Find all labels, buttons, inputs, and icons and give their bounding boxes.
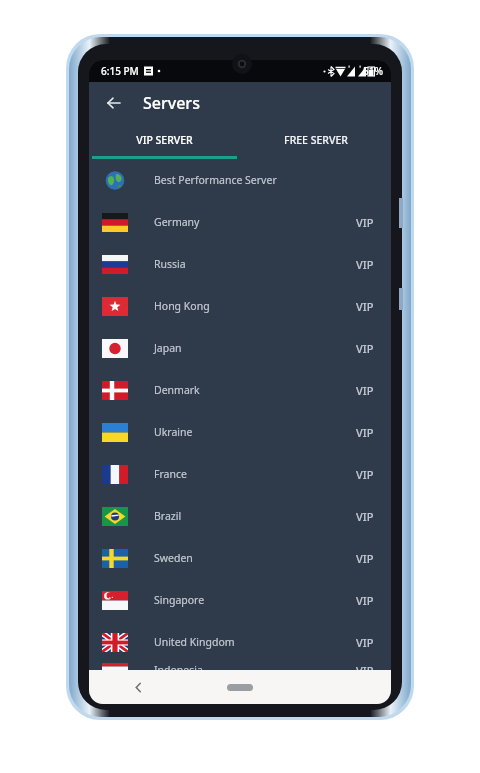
- staticText: United Kingdom: [154, 635, 235, 649]
- staticText: VIP: [356, 509, 374, 524]
- staticText: VIP: [356, 215, 374, 230]
- staticText: VIP: [356, 383, 374, 398]
- button[interactable]: Hong Kong: [89, 285, 391, 327]
- staticText: Japan: [154, 341, 182, 355]
- staticText: VIP: [356, 663, 374, 670]
- staticText: VIP: [356, 257, 374, 272]
- staticText: Best Performance Server: [154, 173, 277, 187]
- button[interactable]: Indonesia: [89, 663, 391, 670]
- staticText: Germany: [154, 215, 200, 229]
- staticText: VIP: [356, 593, 374, 608]
- staticText: VIP: [356, 635, 374, 650]
- button[interactable]: Brazil: [89, 495, 391, 537]
- staticText: Brazil: [154, 509, 182, 523]
- staticText: Sweden: [154, 551, 193, 565]
- button[interactable]: Back: [125, 674, 151, 700]
- staticText: VIP: [356, 341, 374, 356]
- staticText: FREE SERVER: [284, 133, 348, 147]
- button[interactable]: Back: [101, 90, 127, 116]
- button[interactable]: VIP SERVER: [89, 124, 240, 156]
- button[interactable]: France: [89, 453, 391, 495]
- button[interactable]: Denmark: [89, 369, 391, 411]
- button[interactable]: Russia: [89, 243, 391, 285]
- staticText: Ukraine: [154, 425, 193, 439]
- button[interactable]: Germany: [89, 201, 391, 243]
- staticText: Indonesia: [154, 663, 203, 670]
- staticText: France: [154, 467, 187, 481]
- staticText: Denmark: [154, 383, 200, 397]
- staticText: Singapore: [154, 593, 205, 607]
- staticText: VIP: [356, 299, 374, 314]
- staticText: VIP SERVER: [136, 133, 193, 147]
- staticText: VIP: [356, 467, 374, 482]
- button[interactable]: Best Performance Server: [89, 159, 391, 201]
- staticText: Hong Kong: [154, 299, 210, 313]
- staticText: 6:15 PM: [101, 64, 139, 78]
- button[interactable]: FREE SERVER: [240, 124, 391, 156]
- button[interactable]: Singapore: [89, 579, 391, 621]
- button[interactable]: Ukraine: [89, 411, 391, 453]
- staticText: 51%: [363, 64, 383, 78]
- staticText: Servers: [143, 92, 200, 114]
- button[interactable]: Japan: [89, 327, 391, 369]
- button[interactable]: Home: [223, 679, 257, 695]
- staticText: VIP: [356, 425, 374, 440]
- button[interactable]: United Kingdom: [89, 621, 391, 663]
- button[interactable]: Sweden: [89, 537, 391, 579]
- staticText: Russia: [154, 257, 186, 271]
- staticText: VIP: [356, 551, 374, 566]
